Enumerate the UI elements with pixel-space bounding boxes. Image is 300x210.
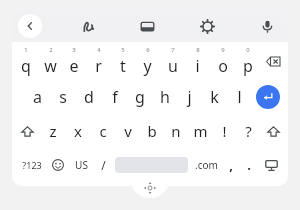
staticText: 2 (49, 46, 53, 54)
staticText: j (187, 86, 192, 108)
staticText: 9 (221, 46, 225, 54)
button[interactable]: 8 (185, 42, 210, 80)
staticText: y (143, 55, 152, 77)
staticText: 5 (121, 46, 125, 54)
button[interactable]: ? (236, 114, 260, 148)
button[interactable]: 0 (235, 42, 260, 80)
staticText: v (124, 121, 132, 141)
button[interactable]: Backspace (260, 42, 286, 80)
staticText: 6 (146, 46, 150, 54)
button[interactable]: m (188, 114, 212, 148)
button[interactable]: Shift (260, 114, 286, 148)
button[interactable]: 9 (210, 42, 235, 80)
button[interactable]: Enter (256, 85, 280, 109)
button[interactable]: j (177, 80, 202, 114)
button[interactable]: v (115, 114, 140, 148)
staticText: 1 (24, 46, 28, 54)
button[interactable]: 5 (110, 42, 135, 80)
button[interactable]: d (76, 80, 102, 114)
staticText: x (74, 121, 82, 141)
button[interactable]: .com (190, 148, 222, 182)
staticText: m (193, 121, 208, 141)
staticText: 8 (196, 46, 200, 54)
button[interactable]: 1 (14, 42, 38, 80)
button[interactable]: x (65, 114, 90, 148)
staticText: i (195, 55, 200, 77)
staticText: g (135, 86, 145, 108)
button[interactable]: 2 (38, 42, 62, 80)
staticText: / (101, 157, 106, 173)
button[interactable]: . (240, 148, 258, 182)
staticText: s (59, 86, 67, 108)
button[interactable]: h (152, 80, 177, 114)
staticText: z (49, 121, 57, 141)
button[interactable]: 3 (62, 42, 86, 80)
button[interactable]: z (40, 114, 65, 148)
staticText: c (99, 121, 107, 141)
staticText: 0 (246, 46, 250, 54)
button[interactable]: a (24, 80, 50, 114)
staticText: f (112, 86, 118, 108)
staticText: , (229, 156, 233, 174)
staticText: u (168, 55, 178, 77)
staticText: r (95, 55, 102, 77)
staticText: b (147, 121, 157, 141)
button[interactable]: ?123 (17, 148, 47, 182)
button[interactable]: c (90, 114, 115, 148)
button[interactable]: Move keyboard (130, 178, 170, 198)
button[interactable]: / (93, 148, 113, 182)
staticText: .com (195, 158, 218, 172)
staticText: ?123 (22, 159, 42, 171)
button[interactable]: 7 (160, 42, 185, 80)
staticText: ! (222, 121, 227, 141)
staticText: d (84, 86, 94, 108)
staticText: 7 (171, 46, 175, 54)
staticText: 3 (72, 46, 76, 54)
button[interactable]: k (202, 80, 227, 114)
button[interactable]: Emoji (47, 148, 69, 182)
button[interactable]: l (227, 80, 252, 114)
staticText: q (21, 55, 31, 77)
staticText: e (69, 55, 79, 77)
staticText: . (247, 156, 251, 174)
staticText: n (171, 121, 181, 141)
staticText: a (33, 86, 42, 108)
button[interactable]: 6 (135, 42, 160, 80)
button[interactable]: Voice input (254, 13, 280, 39)
staticText: t (120, 55, 126, 77)
button[interactable]: f (102, 80, 127, 114)
button[interactable]: n (164, 114, 188, 148)
staticText: w (44, 55, 57, 77)
staticText: p (243, 55, 253, 77)
button[interactable]: Clipboard (134, 13, 160, 39)
staticText: US (75, 158, 88, 172)
staticText: o (218, 55, 228, 77)
button[interactable]: Settings (194, 13, 220, 39)
button[interactable]: US (69, 148, 93, 182)
staticText: 4 (97, 46, 101, 54)
button[interactable]: , (222, 148, 240, 182)
staticText: l (237, 86, 242, 108)
staticText: h (160, 86, 170, 108)
button[interactable]: b (140, 114, 164, 148)
staticText: k (210, 86, 219, 108)
button[interactable]: Shift (14, 114, 40, 148)
button[interactable]: s (50, 80, 76, 114)
button[interactable]: Back (18, 14, 42, 38)
button[interactable]: 4 (86, 42, 110, 80)
button[interactable]: Hide keyboard (258, 148, 284, 182)
button[interactable]: Handwriting (75, 13, 101, 39)
button[interactable]: g (127, 80, 152, 114)
staticText: ? (245, 121, 252, 141)
button[interactable]: ! (212, 114, 236, 148)
